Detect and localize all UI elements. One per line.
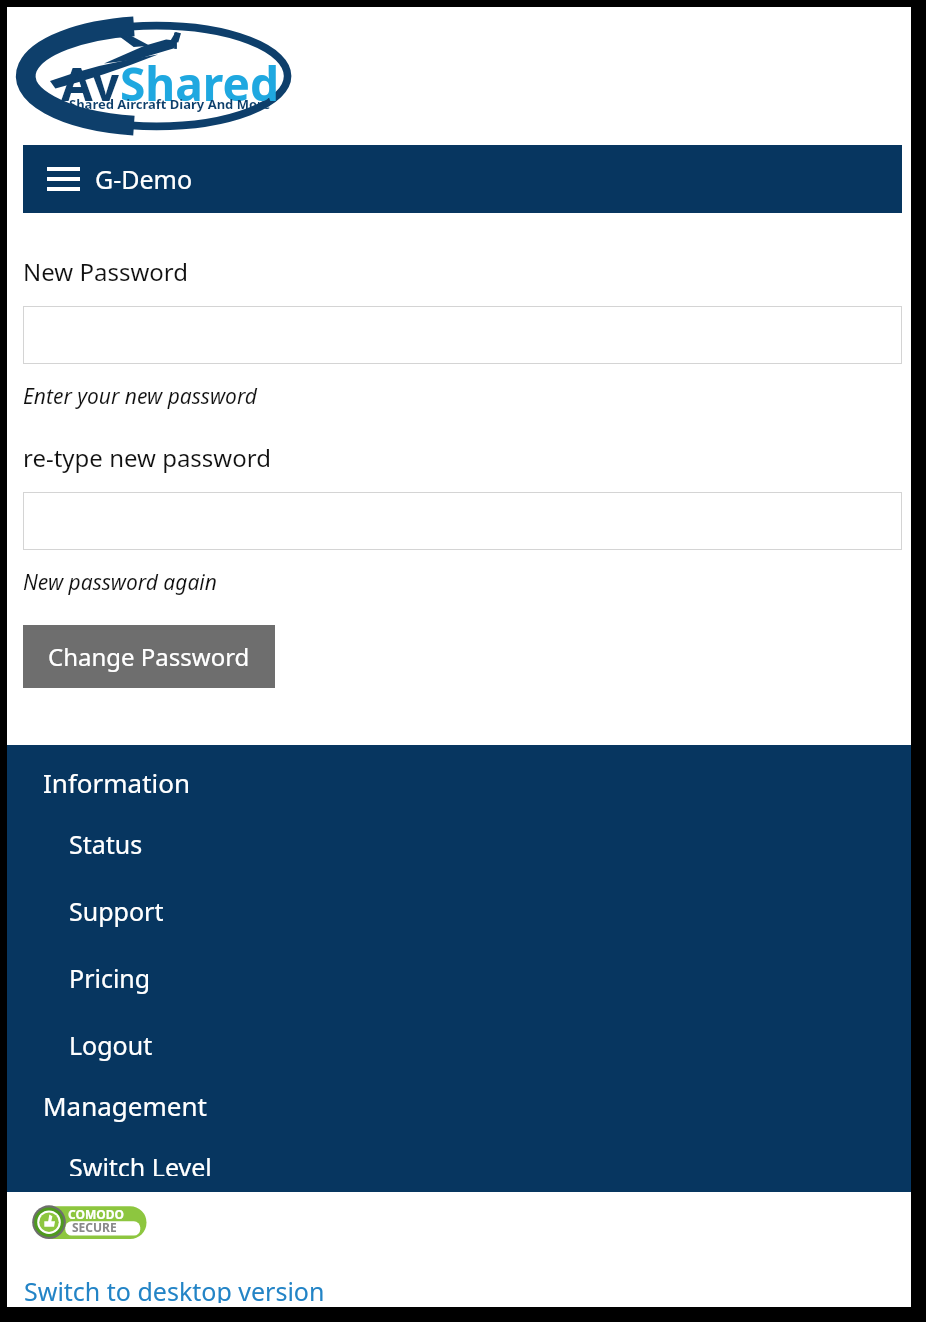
button[interactable]: Open navigation menu <box>43 157 83 201</box>
button[interactable]: Support <box>7 877 911 944</box>
staticText: Management <box>43 1088 207 1123</box>
staticText: re-type new password <box>23 441 271 474</box>
staticText: Change Password <box>48 640 250 673</box>
button[interactable]: Logout <box>7 1011 911 1078</box>
staticText: Support <box>69 894 164 928</box>
staticText: Information <box>43 765 191 800</box>
staticText: Logout <box>69 1028 153 1062</box>
staticText: Switch to desktop version <box>24 1274 325 1303</box>
button[interactable]: Switch Level <box>7 1133 911 1192</box>
button[interactable]: Comodo Secure <box>24 1202 149 1244</box>
staticText: SECURE <box>72 1219 117 1235</box>
staticText: COMODO <box>68 1206 125 1222</box>
button[interactable]: Change Password <box>23 625 275 688</box>
staticText: Shared Aircraft Diary And More <box>69 95 271 113</box>
button[interactable]: Management <box>7 1078 911 1133</box>
button[interactable]: Status <box>7 810 911 877</box>
button[interactable]: Pricing <box>7 944 911 1011</box>
staticText: New password again <box>23 568 217 597</box>
staticText: Status <box>69 827 143 861</box>
staticText: Pricing <box>69 961 151 995</box>
staticText: Enter your new password <box>23 382 258 411</box>
staticText: New Password <box>23 255 188 288</box>
staticText: Av <box>61 52 120 115</box>
button[interactable] <box>23 492 902 550</box>
staticText: Switch Level <box>69 1150 212 1176</box>
button[interactable]: Information <box>7 755 911 810</box>
button[interactable]: Av <box>23 13 293 139</box>
button[interactable]: Switch to desktop version <box>7 1272 333 1307</box>
staticText: Shared <box>120 52 279 115</box>
button[interactable] <box>23 306 902 364</box>
staticText: G-Demo <box>95 162 193 196</box>
